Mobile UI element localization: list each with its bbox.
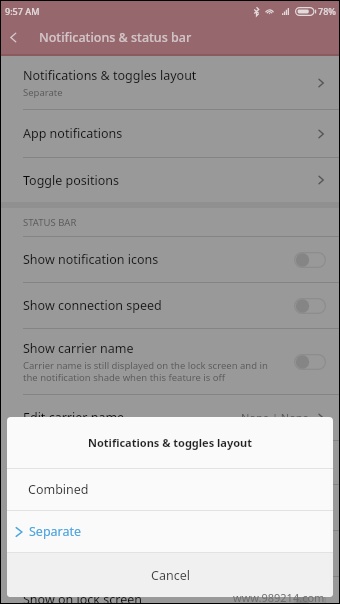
staticText: Notifications & status bar	[39, 29, 192, 46]
staticText: Cancel	[151, 567, 190, 584]
button[interactable]: Edit carrier name	[1, 395, 339, 440]
staticText: Show carrier name	[23, 340, 134, 357]
button[interactable]: Toggle Notification light	[294, 455, 326, 471]
button[interactable]: Show carrier name	[1, 329, 339, 394]
staticText: Carrier name is still displayed on the l…	[23, 359, 268, 384]
button[interactable]: Cancel	[7, 553, 333, 597]
staticText: Notification light	[23, 454, 121, 471]
staticText: Edit carrier name	[23, 409, 125, 426]
staticText: Toggle positions	[23, 172, 120, 189]
button[interactable]: Toggle positions	[1, 158, 339, 202]
button[interactable]: Notification light	[1, 441, 339, 484]
button[interactable]: Show connection speed	[1, 283, 339, 328]
button[interactable]: Notifications & toggles layout	[1, 56, 339, 109]
staticText: None | None	[241, 410, 309, 425]
staticText: Show notification icons	[23, 251, 159, 268]
staticText: www.989214.com	[233, 590, 325, 603]
button[interactable]: Notification badges	[1, 531, 339, 576]
staticText: App notifications	[23, 125, 123, 142]
button[interactable]: Toggle Show on lock screen	[294, 592, 326, 603]
button[interactable]: Floating notifications	[1, 485, 339, 530]
button[interactable]: Toggle Show connection speed	[294, 298, 326, 314]
button[interactable]: Show on lock screen	[1, 577, 339, 603]
button[interactable]: Show notification icons	[1, 237, 339, 282]
staticText: Notification badges	[23, 545, 138, 562]
staticText: 9:57 AM	[5, 5, 40, 17]
staticText: Separate	[23, 86, 63, 99]
button[interactable]: Back	[1, 20, 25, 54]
staticText: Notifications & toggles layout	[88, 435, 252, 450]
button[interactable]: App notifications	[1, 110, 339, 157]
staticText: Show connection speed	[23, 297, 162, 314]
button[interactable]: Combined	[7, 469, 333, 510]
staticText: Show on lock screen	[23, 591, 142, 603]
button[interactable]: Separate	[7, 511, 333, 552]
staticText: STATUS BAR	[23, 216, 77, 229]
staticText: Separate	[29, 523, 82, 540]
staticText: Floating notifications	[23, 499, 147, 516]
staticText: Notifications & toggles layout	[23, 67, 197, 84]
staticText: 78%	[318, 5, 336, 17]
button[interactable]: Toggle Show carrier name	[294, 354, 326, 370]
button[interactable]: Toggle Show notification icons	[294, 252, 326, 268]
staticText: Combined	[28, 481, 89, 498]
